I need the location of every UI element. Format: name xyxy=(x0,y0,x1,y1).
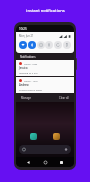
button[interactable]: Back xyxy=(25,159,32,166)
button[interactable]: Battery saver xyxy=(63,41,71,49)
button[interactable]: Search xyxy=(19,145,71,154)
staticText: Jessica xyxy=(19,66,28,70)
button[interactable]: Flashlight xyxy=(45,41,53,49)
button[interactable]: Wi-Fi xyxy=(19,41,27,49)
staticText: Clear all xyxy=(59,96,69,100)
button[interactable]: Chrome xyxy=(53,133,60,140)
staticText: Mon, Jun 21 xyxy=(19,34,34,38)
staticText: Andrew xyxy=(19,83,29,87)
staticText: Gmail · 12m xyxy=(24,79,38,82)
button[interactable]: Gmail · 12m xyxy=(16,77,74,93)
staticText: Meeting at 3 PM xyxy=(19,71,38,74)
button[interactable]: Home xyxy=(42,159,49,166)
staticText: Project brief is ready xyxy=(19,88,42,91)
staticText: Notifications xyxy=(20,55,36,59)
button[interactable]: Messages xyxy=(30,133,37,140)
staticText: Manage xyxy=(21,96,31,100)
button[interactable]: Manage xyxy=(20,95,32,101)
staticText: instant notifications xyxy=(26,8,65,13)
button[interactable]: Gmail · now xyxy=(16,60,74,76)
staticText: 10:25 xyxy=(19,27,27,31)
button[interactable]: Bluetooth xyxy=(28,41,36,49)
button[interactable]: Auto-rotate xyxy=(54,41,62,49)
button[interactable]: Recents xyxy=(58,159,65,166)
staticText: Gmail · now xyxy=(24,62,38,65)
button[interactable]: Clear all xyxy=(58,95,70,101)
button[interactable]: Do not disturb xyxy=(37,41,45,49)
